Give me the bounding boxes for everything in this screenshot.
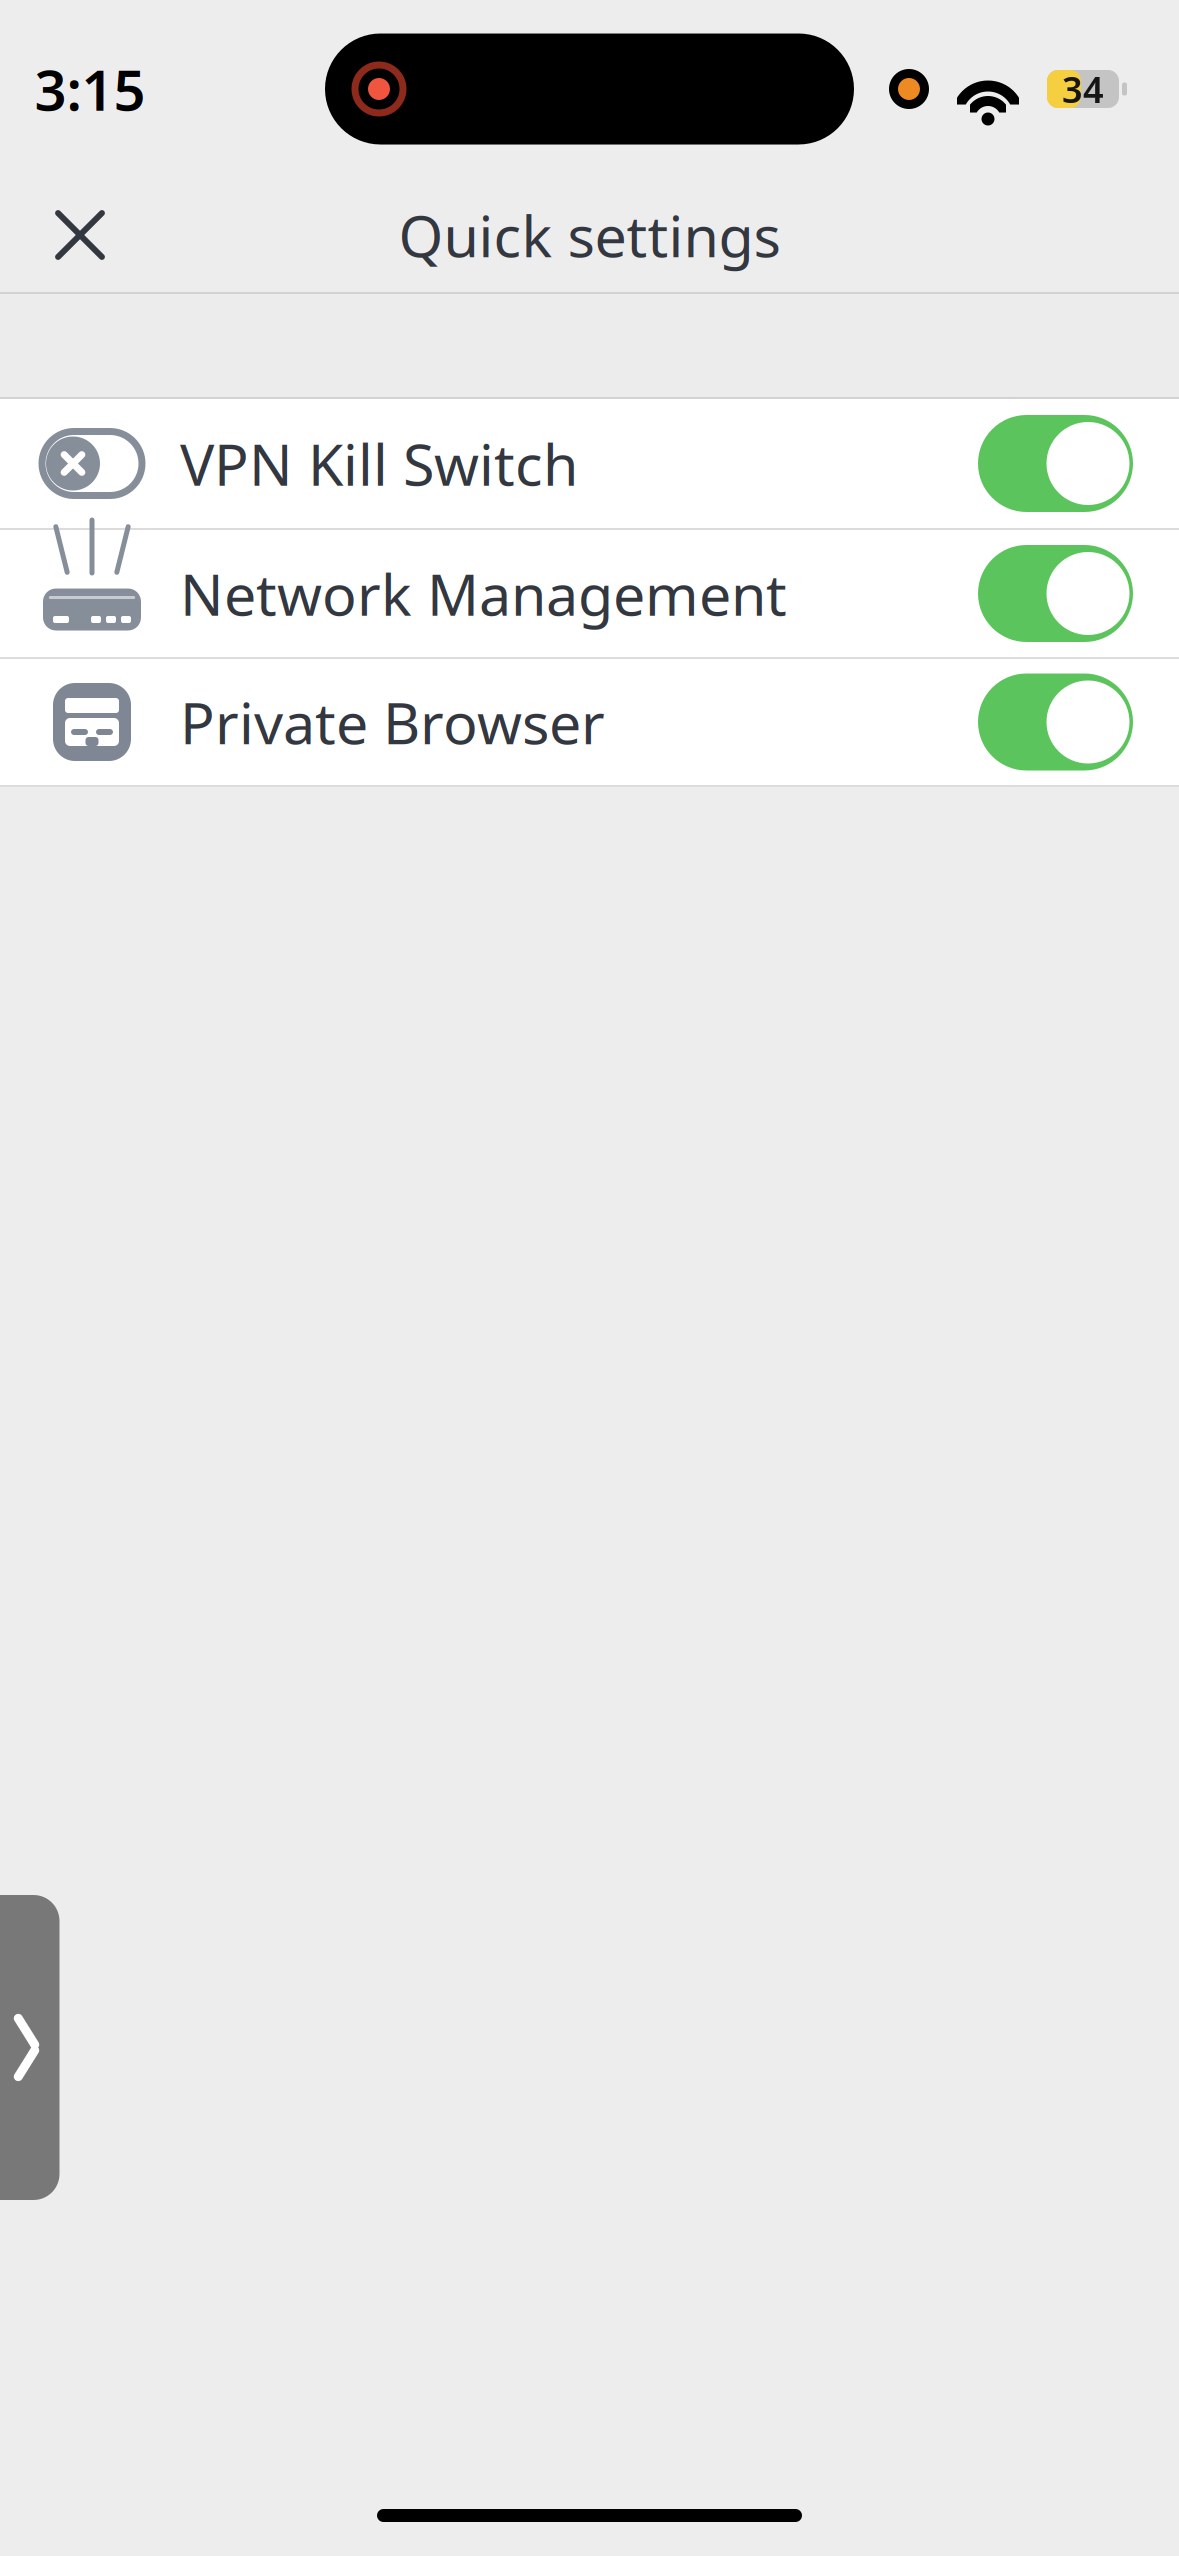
staticText: VPN Kill Switch <box>180 425 578 501</box>
staticText: 3:15 <box>34 52 145 126</box>
button[interactable]: Private Browser <box>0 659 1179 785</box>
button[interactable]: VPN Kill Switch <box>0 399 1179 528</box>
staticText: Network Management <box>180 555 787 631</box>
staticText: 34 <box>1062 65 1104 113</box>
button[interactable]: Network Management <box>0 530 1179 657</box>
button[interactable]: Open side panel <box>0 1895 73 2200</box>
staticText: Quick settings <box>398 197 780 273</box>
button[interactable]: Close <box>32 187 128 283</box>
staticText: Private Browser <box>180 684 605 760</box>
